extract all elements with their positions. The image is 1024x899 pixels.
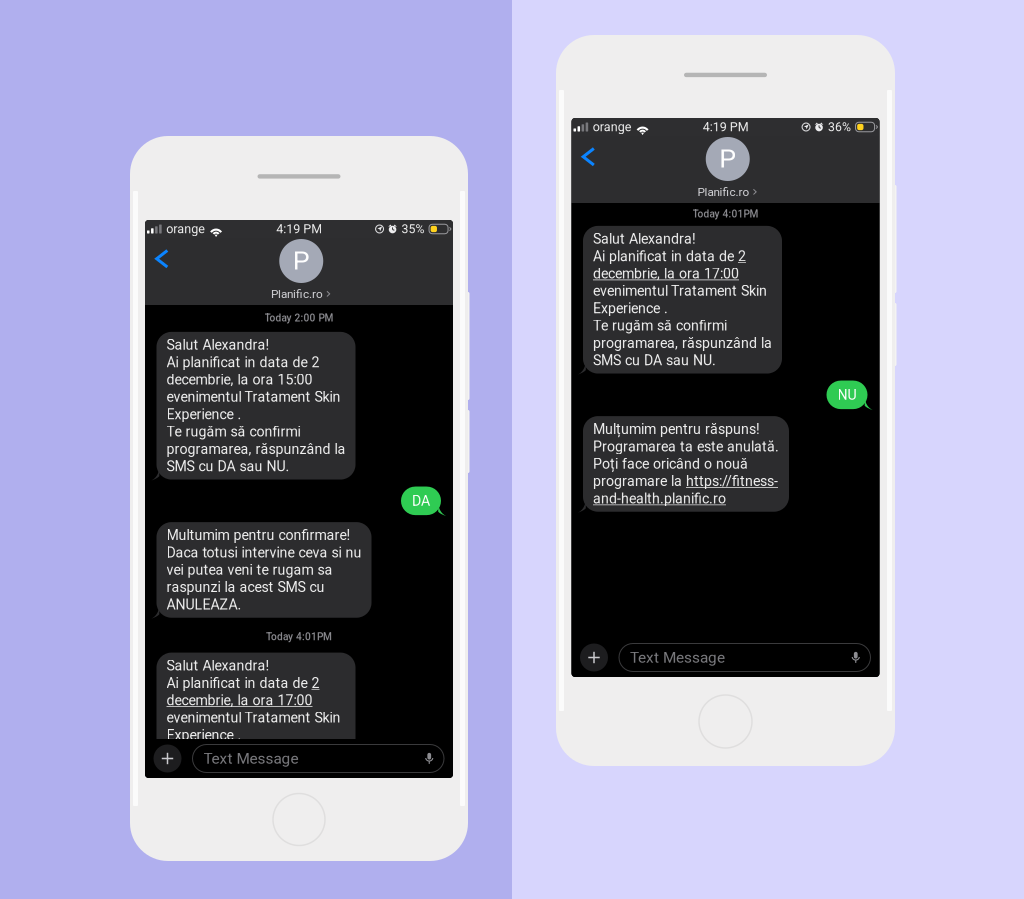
- staticText: P: [719, 143, 736, 174]
- button[interactable]: Planific.ro contact: [689, 133, 766, 202]
- button[interactable]: Text Message: [619, 643, 870, 671]
- staticText: Today 2:00 PM: [264, 312, 333, 324]
- staticText: 35%: [402, 222, 425, 236]
- staticText: DA: [412, 493, 430, 509]
- staticText: Planific.ro: [697, 185, 749, 199]
- staticText: Mulțumim pentru răspuns! Programarea ta …: [593, 421, 779, 507]
- staticText: 36%: [828, 120, 851, 134]
- staticText: Today 4:01PM: [266, 631, 332, 643]
- staticText: Text Message: [203, 749, 298, 767]
- staticText: Salut Alexandra! Ai planificat in data d…: [166, 657, 345, 795]
- button[interactable]: Planific.ro contact: [263, 235, 339, 304]
- staticText: NU: [837, 387, 856, 403]
- button[interactable]: Add attachment: [153, 744, 181, 772]
- staticText: Planific.ro: [271, 287, 323, 301]
- staticText: Text Message: [630, 648, 725, 666]
- staticText: Salut Alexandra! Ai planificat in data d…: [593, 231, 772, 369]
- staticText: Multumim pentru confirmare! Daca totusi …: [166, 527, 361, 613]
- button[interactable]: Back: [571, 142, 608, 175]
- staticText: Today 4:01PM: [692, 208, 758, 220]
- button[interactable]: Back: [145, 244, 182, 277]
- staticText: Salut Alexandra! Ai planificat in data d…: [166, 337, 345, 475]
- button[interactable]: Text Message: [192, 744, 444, 772]
- staticText: orange: [593, 120, 632, 134]
- staticText: 4:19 PM: [276, 222, 322, 236]
- staticText: P: [293, 245, 310, 276]
- button[interactable]: Add attachment: [580, 643, 608, 671]
- staticText: orange: [166, 222, 205, 236]
- staticText: 4:19 PM: [703, 120, 749, 134]
